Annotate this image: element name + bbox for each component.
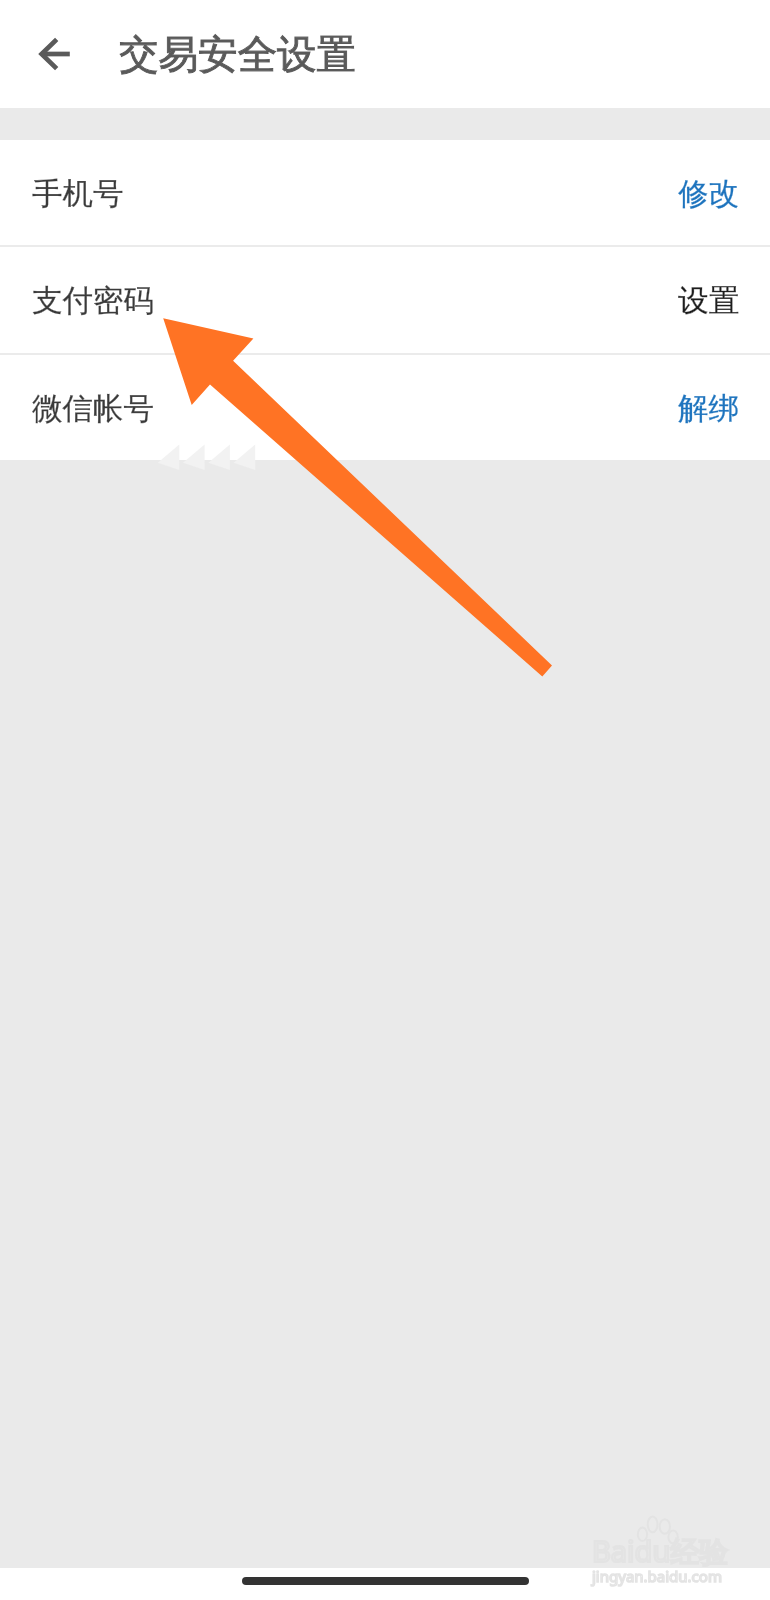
staticText: 手机号 [32,175,124,213]
staticText: 支付密码 [32,282,154,320]
staticText: 交易安全设置 [119,30,356,80]
button[interactable]: Back [0,0,108,108]
staticText: 解绑 [678,390,739,428]
button[interactable]: 微信帐号 [0,355,770,460]
button[interactable]: 修改 [678,175,739,213]
staticText: 手机号 [32,175,124,213]
staticText: 解绑 [678,390,739,428]
staticText: 设置 [678,282,739,320]
staticText: 修改 [678,175,739,213]
staticText: 支付密码 [32,282,154,320]
staticText: Baidu经验 [592,1531,729,1571]
staticText: jingyan.baidu.com [592,1566,722,1586]
staticText: 修改 [678,175,739,213]
button[interactable]: 设置 [678,282,739,320]
button[interactable]: 支付密码 [0,247,770,353]
button[interactable]: 手机号 [0,140,770,245]
staticText: 交易安全设置 [119,30,356,80]
staticText: 微信帐号 [32,390,154,428]
staticText: 设置 [678,282,739,320]
staticText: 微信帐号 [32,390,154,428]
button[interactable]: 解绑 [678,390,739,428]
